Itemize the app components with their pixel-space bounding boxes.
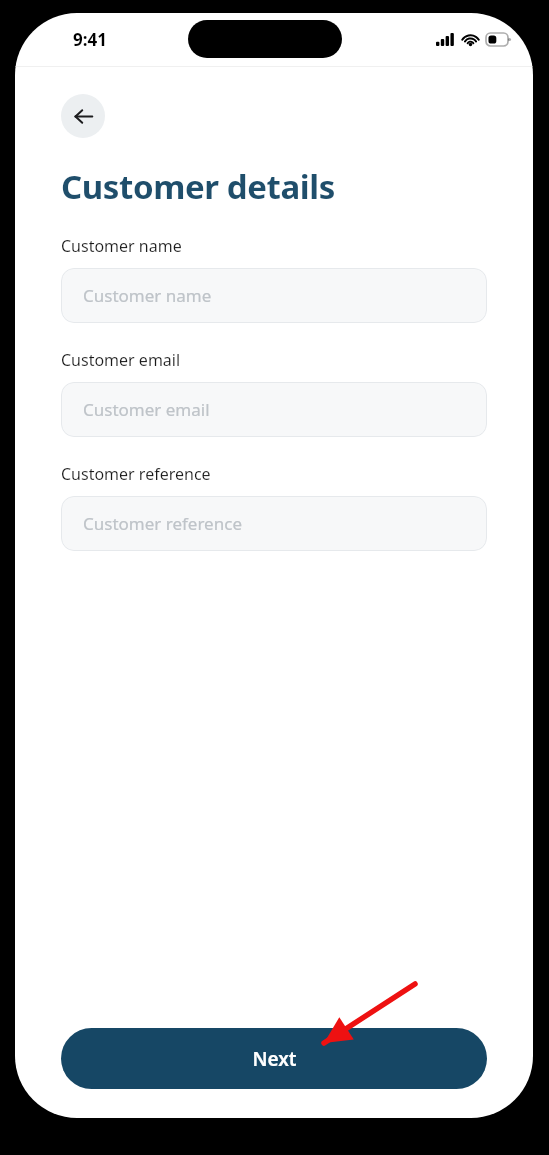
button[interactable]: Customer name <box>61 268 487 323</box>
button[interactable]: Customer reference <box>61 496 487 551</box>
staticText: Customer email <box>61 349 181 371</box>
staticText: Next <box>252 1046 297 1072</box>
staticText: Customer name <box>61 235 182 257</box>
staticText: Customer details <box>61 164 335 209</box>
button[interactable]: Next <box>61 1028 487 1089</box>
button[interactable]: Customer email <box>61 382 487 437</box>
staticText: Customer reference <box>61 463 211 485</box>
button[interactable]: Back <box>61 94 105 138</box>
staticText: Customer reference <box>83 512 242 535</box>
staticText: 9:41 <box>73 28 107 51</box>
staticText: Customer name <box>83 284 212 307</box>
staticText: Customer email <box>83 398 210 421</box>
